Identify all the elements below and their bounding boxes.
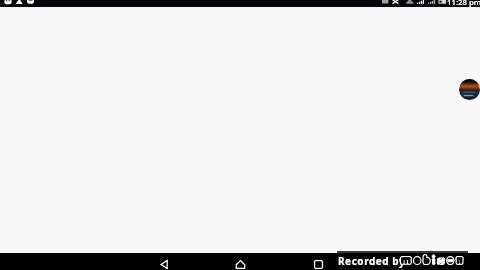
button[interactable]: [0, 0, 480, 270]
button[interactable]: Home: [228, 253, 252, 270]
button[interactable]: Floating assistant bubble: [459, 79, 480, 100]
staticText: 11:28 pm: [447, 0, 480, 8]
button[interactable]: Back: [152, 253, 176, 270]
staticText: Recorded by: [338, 254, 406, 268]
button[interactable]: Recent apps: [306, 253, 330, 270]
